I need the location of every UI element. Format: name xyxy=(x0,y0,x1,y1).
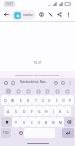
staticText: K xyxy=(59,109,62,114)
button[interactable]: E xyxy=(17,95,25,105)
button[interactable]: ?123 xyxy=(1,128,11,138)
staticText: 10:31 xyxy=(0,61,75,65)
staticText: S xyxy=(15,109,17,114)
button[interactable]: V xyxy=(36,117,43,127)
staticText: V xyxy=(38,120,41,125)
button[interactable]: Shift xyxy=(1,117,12,127)
staticText: Notebookcheck New… xyxy=(20,80,48,84)
button[interactable]: Backspace xyxy=(64,117,74,127)
button[interactable]: Emoji xyxy=(17,128,24,138)
staticText: H xyxy=(45,109,48,114)
staticText: R xyxy=(27,98,30,103)
staticText: Q xyxy=(4,98,7,103)
button[interactable]: Shortcut 3 xyxy=(25,88,31,94)
button[interactable]: M xyxy=(57,117,64,127)
button[interactable]: Shortcut 4 xyxy=(35,88,41,94)
button[interactable]: C xyxy=(28,117,36,127)
staticText: J xyxy=(53,109,54,114)
staticText: notebookcheck.com xyxy=(23,13,34,17)
button[interactable]: X xyxy=(20,117,28,127)
button[interactable]: A xyxy=(4,106,12,116)
button[interactable]: P xyxy=(67,95,74,105)
staticText: E xyxy=(20,98,22,103)
staticText: T xyxy=(35,98,37,103)
staticText: G xyxy=(38,109,41,114)
button[interactable]: W xyxy=(9,95,17,105)
button[interactable]: Shortcut 2 xyxy=(15,88,21,94)
button[interactable]: Google xyxy=(2,79,9,86)
staticText: . xyxy=(58,131,59,135)
staticText: ?123 xyxy=(3,131,9,135)
button[interactable]: Shortcut 1 xyxy=(5,88,11,94)
button[interactable]: U xyxy=(46,95,53,105)
staticText: D xyxy=(23,109,26,114)
button[interactable]: Notebookcheck New… xyxy=(18,80,50,84)
staticText: M xyxy=(59,120,63,125)
button[interactable]: R xyxy=(25,95,32,105)
staticText: X xyxy=(23,120,25,125)
staticText: F xyxy=(31,109,33,114)
button[interactable]: Emoji xyxy=(52,79,59,86)
staticText: B xyxy=(45,120,48,125)
staticText: L xyxy=(67,109,69,114)
button[interactable]: Share xyxy=(55,10,64,19)
button[interactable]: Settings xyxy=(66,79,73,86)
staticText: I xyxy=(56,98,58,103)
button[interactable]: More options xyxy=(64,10,73,19)
staticText: , xyxy=(14,131,15,135)
staticText: W xyxy=(11,98,15,103)
button[interactable]: B xyxy=(43,117,50,127)
staticText: ab xyxy=(48,3,51,6)
staticText: 10:31 xyxy=(6,2,13,6)
staticText: P xyxy=(69,98,72,103)
button[interactable]: Enter xyxy=(62,128,74,138)
button[interactable]: H xyxy=(43,106,50,116)
button[interactable]: Z xyxy=(39,95,46,105)
button[interactable]: Shortcut 7 xyxy=(64,88,70,94)
button[interactable]: O xyxy=(60,95,67,105)
button[interactable]: L xyxy=(64,106,71,116)
staticText: N xyxy=(52,120,55,125)
button[interactable]: S xyxy=(12,106,20,116)
button[interactable]: I xyxy=(53,95,60,105)
button[interactable]: Shortcut 6 xyxy=(54,88,60,94)
button[interactable]: Clipboard xyxy=(9,79,16,86)
button[interactable]: Q xyxy=(1,95,9,105)
button[interactable]: K xyxy=(57,106,64,116)
button[interactable]: D xyxy=(20,106,28,116)
button[interactable]: , xyxy=(11,128,17,138)
button[interactable]: notebookcheck.com xyxy=(12,10,36,20)
button[interactable]: Translate xyxy=(59,79,66,86)
button[interactable]: Call xyxy=(46,10,55,19)
button[interactable]: Shortcut 5 xyxy=(44,88,50,94)
button[interactable]: T xyxy=(32,95,39,105)
staticText: A xyxy=(7,109,10,114)
staticText: U xyxy=(48,98,51,103)
staticText: notebookcheck.com/mobile-test.html xyxy=(15,73,60,76)
staticText: C xyxy=(31,120,34,125)
button[interactable]: F xyxy=(28,106,36,116)
staticText: Z xyxy=(42,98,44,103)
staticText: O xyxy=(62,98,65,103)
button[interactable]: J xyxy=(50,106,57,116)
button[interactable]: Y xyxy=(12,117,20,127)
button[interactable]: G xyxy=(36,106,43,116)
staticText: Y xyxy=(15,120,17,125)
button[interactable]: Page info xyxy=(37,10,46,19)
button[interactable]: N xyxy=(50,117,57,127)
button[interactable]: Back xyxy=(2,10,11,19)
